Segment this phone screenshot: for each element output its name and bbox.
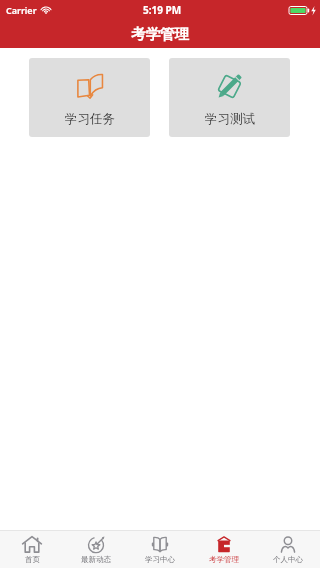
button[interactable]: 学习测试	[169, 58, 290, 137]
staticText: 学习任务	[65, 111, 115, 127]
staticText: 个人中心	[273, 555, 303, 564]
button[interactable]: 学习任务	[29, 58, 150, 137]
staticText: 考学管理	[131, 25, 189, 43]
button[interactable]: 最新动态	[64, 531, 128, 568]
button[interactable]: 首页	[0, 531, 64, 568]
staticText: 最新动态	[81, 555, 111, 564]
staticText: 5:19 PM	[143, 3, 182, 17]
staticText: 学习中心	[145, 555, 175, 564]
staticText: 考学管理	[209, 555, 239, 564]
staticText: 首页	[25, 555, 40, 564]
staticText: 学习测试	[205, 111, 255, 127]
button[interactable]: 学习中心	[128, 531, 192, 568]
staticText: Carrier	[6, 4, 37, 16]
button[interactable]: 个人中心	[256, 531, 320, 568]
button[interactable]: 考学管理	[192, 531, 256, 568]
